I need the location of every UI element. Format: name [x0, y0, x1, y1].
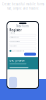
staticText: Register — [9, 28, 21, 32]
staticText: Email address — [9, 36, 19, 38]
staticText: Full name — [9, 32, 15, 34]
button[interactable] — [24, 53, 36, 56]
staticText: New form — [16, 24, 29, 28]
staticText: Password — [9, 45, 17, 47]
staticText: I agree to the terms — [12, 50, 24, 52]
staticText: Live preview — [9, 59, 24, 62]
staticText: fast, simple and flexible — [7, 7, 39, 10]
staticText: Phone number — [9, 41, 20, 42]
staticText: Create beautiful mobile forms — [2, 2, 44, 6]
